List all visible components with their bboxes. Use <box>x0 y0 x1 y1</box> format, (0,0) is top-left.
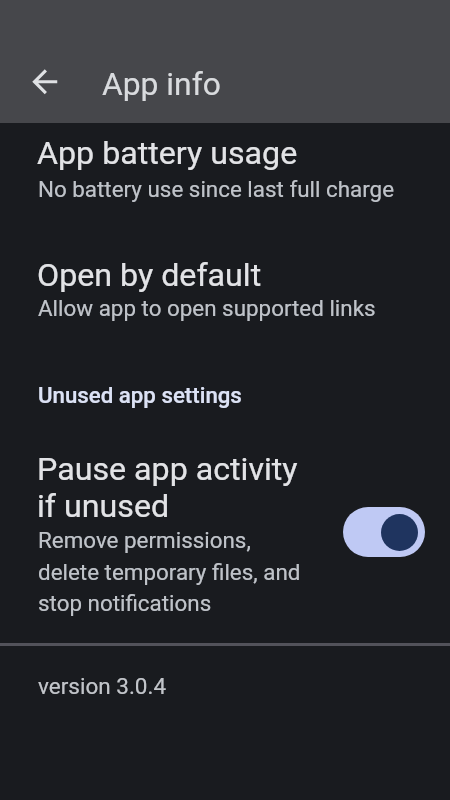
staticText: Remove permissions, <box>38 527 251 553</box>
staticText: if unused <box>37 487 170 525</box>
staticText: App battery usage <box>37 134 298 172</box>
button[interactable] <box>343 507 425 557</box>
staticText: App info <box>102 65 221 102</box>
staticText: delete temporary files, and <box>38 559 301 585</box>
staticText: Allow app to open supported links <box>38 295 376 321</box>
staticText: stop notifications <box>38 590 212 616</box>
button[interactable] <box>20 57 68 105</box>
staticText: Open by default <box>37 256 262 294</box>
staticText: Pause app activity <box>37 450 298 488</box>
button[interactable] <box>0 442 450 620</box>
button[interactable] <box>0 125 450 215</box>
staticText: version 3.0.4 <box>38 673 167 699</box>
staticText: No battery use since last full charge <box>38 176 395 202</box>
staticText: Unused app settings <box>38 382 242 408</box>
button[interactable] <box>0 246 450 336</box>
